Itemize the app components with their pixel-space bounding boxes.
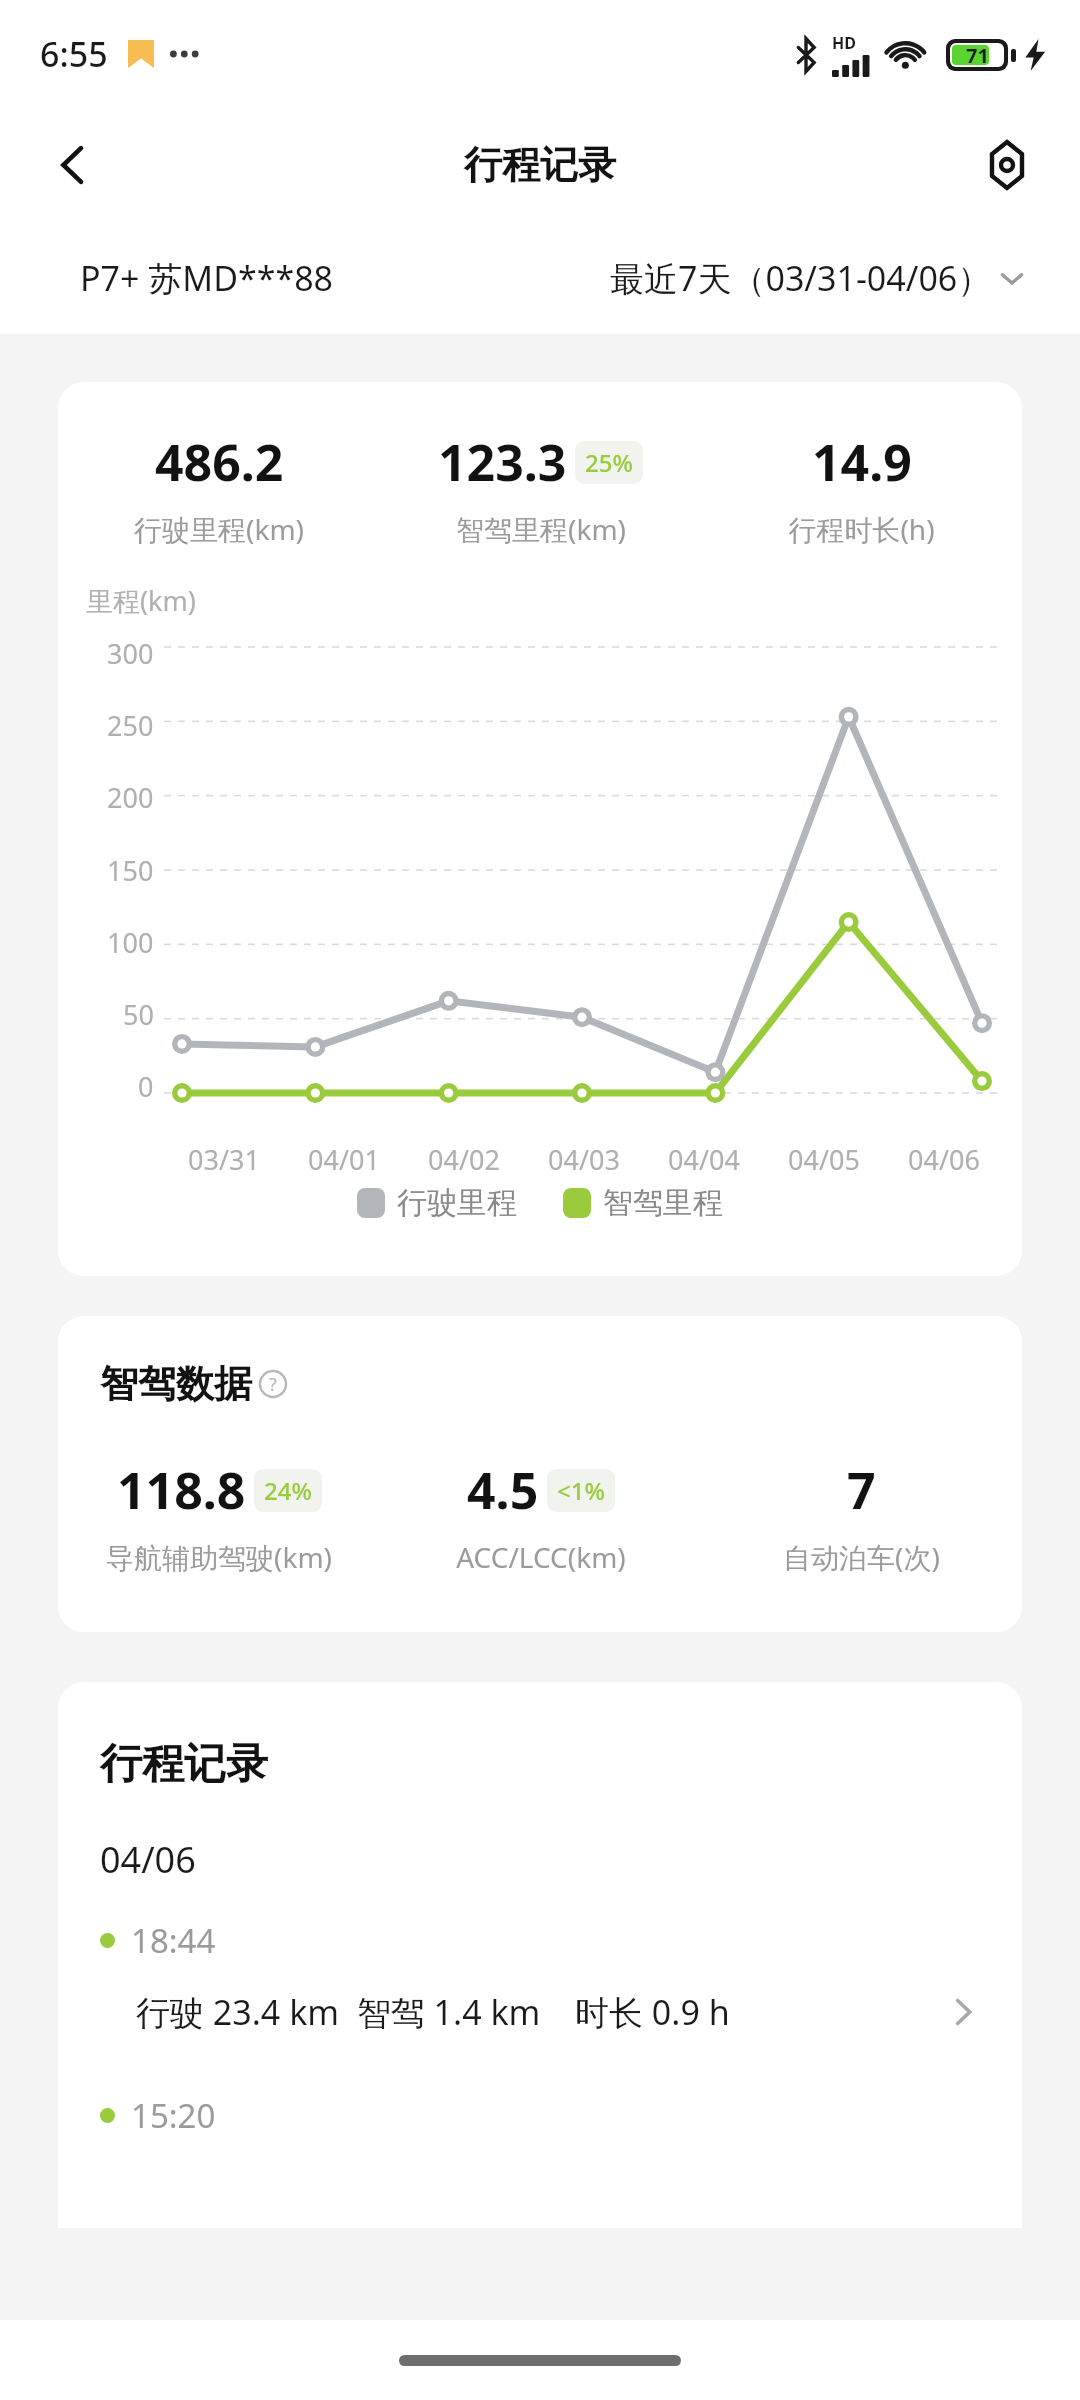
staticText: 03/31 — [188, 1141, 260, 1178]
staticText: 15:20 — [131, 2093, 216, 2138]
button[interactable]: 行驶里程 — [357, 1184, 517, 1222]
staticText: 24% — [264, 1474, 312, 1507]
staticText: 04/01 — [308, 1141, 380, 1178]
staticText: 14.9 — [812, 428, 912, 496]
staticText: HD — [832, 32, 856, 54]
staticText: ? — [269, 1372, 277, 1397]
staticText: 智驾数据 — [100, 1360, 252, 1408]
staticText: 04/05 — [788, 1141, 860, 1178]
staticText: 486.2 — [155, 428, 284, 496]
staticText: 行程记录 — [464, 141, 616, 189]
staticText: 50 — [123, 996, 154, 1033]
staticText: 时长 0.9 h — [575, 1989, 730, 2035]
staticText: 250 — [107, 707, 154, 744]
button[interactable]: 最近7天（03/31-04/06） — [610, 255, 1028, 301]
staticText: <1% — [557, 1474, 605, 1507]
staticText: 导航辅助驾驶(km) — [106, 1538, 332, 1576]
staticText: 300 — [107, 635, 154, 672]
staticText: 最近7天（03/31-04/06） — [610, 255, 992, 301]
staticText: 智驾里程 — [603, 1184, 723, 1222]
staticText: 行驶里程(km) — [134, 510, 304, 548]
staticText: 行程记录 — [100, 1738, 268, 1791]
staticText: P7+ 苏MD***88 — [80, 255, 334, 301]
staticText: 04/06 — [908, 1141, 980, 1178]
staticText: 4.5 — [467, 1456, 539, 1524]
staticText: 自动泊车(次) — [783, 1538, 940, 1576]
staticText: 118.8 — [117, 1456, 246, 1524]
staticText: 150 — [107, 852, 154, 889]
button[interactable]: 智驾里程 — [563, 1184, 723, 1222]
staticText: 智驾里程(km) — [456, 510, 626, 548]
staticText: 18:44 — [131, 1918, 216, 1963]
staticText: 200 — [107, 779, 154, 816]
staticText: 6:55 — [40, 31, 108, 77]
button[interactable]: Back — [34, 126, 112, 204]
staticText: 行程时长(h) — [788, 510, 935, 548]
staticText: ACC/LCC(km) — [456, 1538, 626, 1576]
button[interactable]: 18:44 — [58, 1918, 1022, 2035]
staticText: 0 — [138, 1068, 154, 1105]
staticText: 25% — [585, 446, 633, 479]
button[interactable]: 15:20 — [100, 2093, 216, 2138]
staticText: 04/02 — [428, 1141, 500, 1178]
button[interactable]: Settings — [966, 124, 1048, 206]
staticText: 123.3 — [438, 428, 567, 496]
staticText: 行驶 23.4 km 智驾 1.4 km — [136, 1989, 541, 2035]
staticText: 7 — [847, 1456, 876, 1524]
staticText: 里程(km) — [86, 582, 196, 619]
staticText: 04/06 — [100, 1835, 196, 1884]
staticText: 04/03 — [548, 1141, 620, 1178]
staticText: 71 — [966, 42, 989, 69]
staticText: 行驶里程 — [397, 1184, 517, 1222]
button[interactable]: 智驾数据 — [100, 1360, 290, 1408]
staticText: 04/04 — [668, 1141, 740, 1178]
staticText: 100 — [107, 924, 154, 961]
